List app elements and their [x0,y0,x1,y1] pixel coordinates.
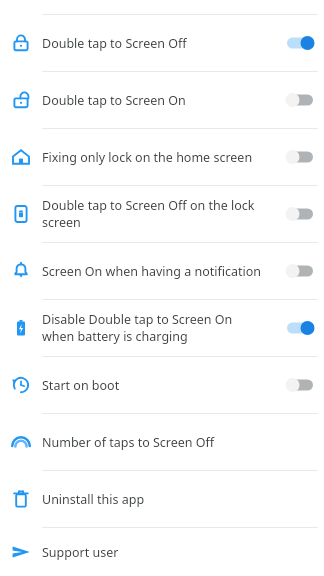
button[interactable]: Disable Double tap to Screen On when bat… [0,300,324,356]
staticText: Number of taps to Screen Off [42,434,264,451]
button[interactable]: Support user [0,528,324,576]
staticText: Start on boot [42,377,264,394]
button[interactable]: Off [283,146,317,168]
staticText: Uninstall this app [42,491,264,508]
button[interactable]: Start on boot [0,357,324,413]
staticText: Double tap to Screen Off on the lock scr… [42,197,264,231]
button[interactable]: Screen On when having a notification [0,243,324,299]
button[interactable]: Fixing only lock on the home screen [0,129,324,185]
staticText: Disable Double tap to Screen On when bat… [42,311,264,345]
button[interactable]: Number of taps to Screen Off [0,414,324,470]
staticText: Support user [42,544,264,561]
button[interactable]: On [283,32,317,54]
staticText: Screen On when having a notification [42,263,264,280]
button[interactable]: Double tap to Screen Off [0,15,324,71]
button[interactable]: Off [283,89,317,111]
button[interactable]: Off [283,260,317,282]
staticText: Fixing only lock on the home screen [42,149,264,166]
button[interactable]: Uninstall this app [0,471,324,527]
button[interactable]: Double tap to Screen On [0,72,324,128]
staticText: Double tap to Screen Off [42,35,264,52]
staticText: Double tap to Screen On [42,92,264,109]
button[interactable]: Off [283,374,317,396]
button[interactable]: On [283,317,317,339]
button[interactable]: Off [283,203,317,225]
button[interactable]: Double tap to Screen Off on the lock scr… [0,186,324,242]
